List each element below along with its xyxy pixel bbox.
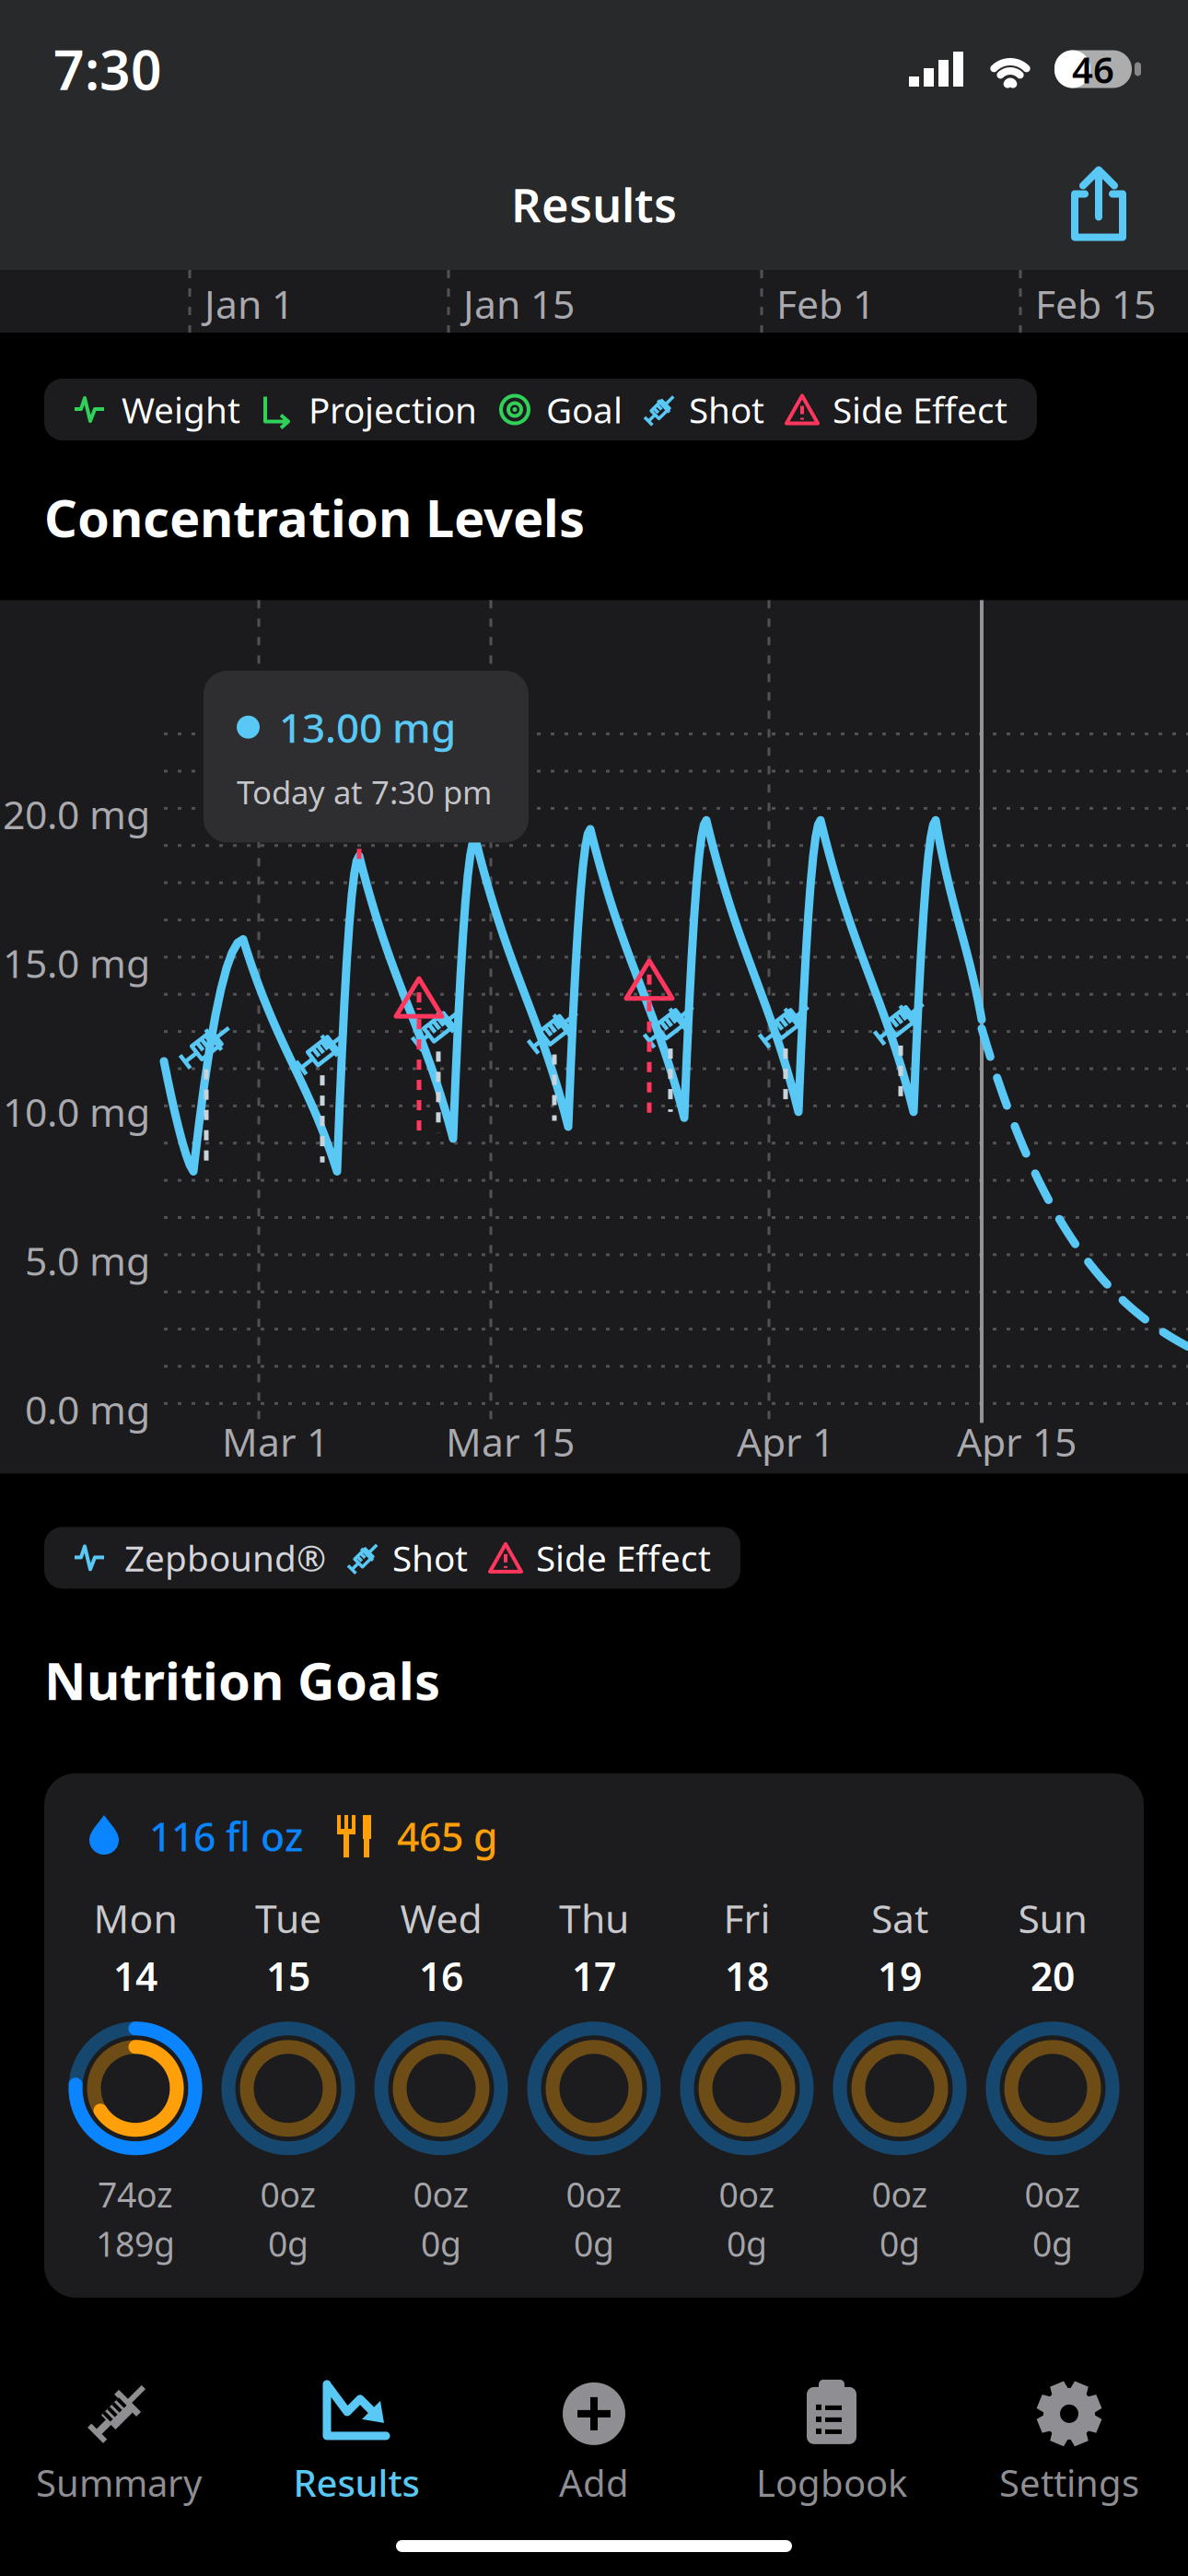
button[interactable]: Mon (59, 1892, 212, 2266)
staticText: Side Effect (536, 1534, 711, 1581)
staticText: 189g (96, 2221, 175, 2266)
staticText: 465 g (397, 1810, 497, 1862)
staticText: 20.0 mg (3, 788, 150, 840)
staticText: 14 (113, 1950, 157, 2002)
staticText: Logbook (756, 2458, 907, 2507)
staticText: Mar 15 (446, 1415, 575, 1467)
staticText: Mon (93, 1892, 177, 1944)
button[interactable]: Settings (950, 2371, 1188, 2512)
staticText: Fri (723, 1892, 770, 1944)
staticText: Nutrition Goals (44, 1646, 440, 1714)
staticText: 0oz (719, 2171, 775, 2217)
button[interactable]: Tue (212, 1892, 365, 2266)
staticText: Summary (36, 2458, 202, 2507)
staticText: Today at 7:30 pm (237, 771, 492, 813)
staticText: 0oz (566, 2171, 622, 2217)
staticText: Results (293, 2458, 419, 2507)
staticText: 116 fl oz (149, 1810, 303, 1862)
staticText: Shot (392, 1534, 468, 1581)
staticText: Goal (546, 386, 623, 433)
staticText: Sun (1018, 1892, 1087, 1944)
staticText: 15 (266, 1950, 310, 2002)
staticText: 15.0 mg (3, 937, 150, 989)
staticText: Results (511, 173, 677, 235)
staticText: 0g (1032, 2221, 1073, 2266)
button[interactable]: Fri (670, 1892, 823, 2266)
staticText: Side Effect (833, 386, 1007, 433)
staticText: Add (559, 2458, 629, 2507)
staticText: 20 (1031, 1950, 1075, 2002)
staticText: 13.00 mg (279, 700, 456, 754)
staticText: Feb 1 (776, 277, 875, 330)
button[interactable]: Sat (823, 1892, 976, 2266)
staticText: 0oz (872, 2171, 928, 2217)
staticText: 7:30 (53, 33, 162, 105)
staticText: 5.0 mg (25, 1234, 150, 1286)
staticText: Settings (999, 2458, 1139, 2507)
staticText: 74oz (98, 2171, 173, 2217)
staticText: Apr 1 (737, 1415, 834, 1467)
staticText: 0g (268, 2221, 309, 2266)
staticText: 0g (879, 2221, 920, 2266)
staticText: 19 (878, 1950, 922, 2002)
button[interactable]: Results (238, 2371, 475, 2512)
button[interactable]: Share (1070, 166, 1127, 242)
staticText: 0oz (1025, 2171, 1081, 2217)
staticText: Jan 15 (463, 277, 575, 330)
staticText: 0g (574, 2221, 614, 2266)
staticText: Wed (400, 1892, 482, 1944)
staticText: 0g (421, 2221, 461, 2266)
staticText: 0g (727, 2221, 767, 2266)
staticText: 10.0 mg (3, 1085, 150, 1138)
staticText: Projection (309, 386, 477, 433)
staticText: 18 (725, 1950, 769, 2002)
button[interactable]: Add (475, 2371, 713, 2512)
button[interactable]: Summary (0, 2371, 238, 2512)
staticText: Zepbound® (124, 1534, 326, 1581)
button[interactable]: Sun (976, 1892, 1129, 2266)
staticText: 0.0 mg (25, 1383, 150, 1435)
staticText: Apr 15 (957, 1415, 1077, 1467)
button[interactable]: Logbook (713, 2371, 950, 2512)
staticText: Sat (871, 1892, 928, 1944)
staticText: Jan 1 (204, 277, 294, 330)
staticText: Weight (122, 386, 240, 433)
staticText: Feb 15 (1035, 277, 1156, 330)
staticText: Mar 1 (222, 1415, 329, 1467)
staticText: 46 (1072, 45, 1114, 94)
staticText: 0oz (260, 2171, 316, 2217)
staticText: Concentration Levels (44, 483, 585, 551)
staticText: Shot (689, 386, 764, 433)
staticText: 0oz (413, 2171, 469, 2217)
staticText: 16 (419, 1950, 463, 2002)
staticText: Thu (559, 1892, 629, 1944)
button[interactable]: Thu (518, 1892, 670, 2266)
staticText: 17 (572, 1950, 616, 2002)
staticText: Tue (255, 1892, 321, 1944)
button[interactable]: Wed (365, 1892, 518, 2266)
